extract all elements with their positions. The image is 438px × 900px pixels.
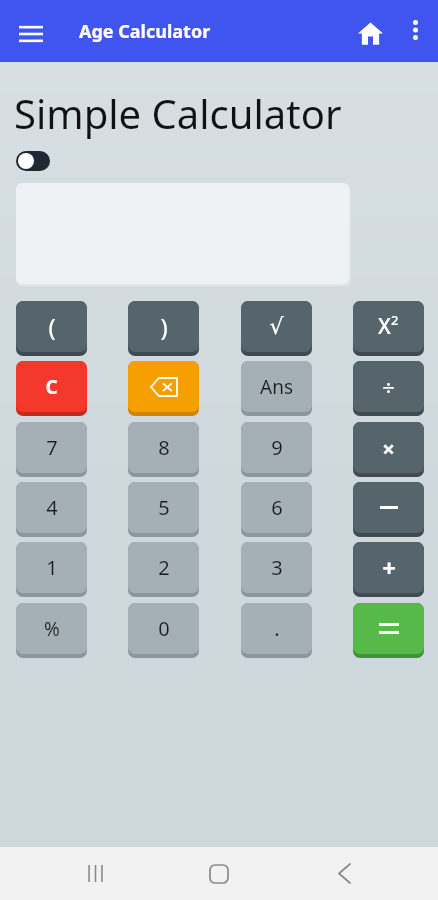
- staticText: ): [160, 310, 168, 343]
- button[interactable]: Ans: [241, 361, 312, 416]
- staticText: +: [382, 551, 396, 584]
- button[interactable]: ÷: [353, 361, 424, 416]
- button[interactable]: 1: [16, 542, 87, 597]
- button[interactable]: 0: [128, 603, 199, 658]
- button[interactable]: +: [353, 542, 424, 597]
- button[interactable]: 2: [128, 542, 199, 597]
- staticText: 2: [158, 554, 170, 581]
- other: Backspace: [128, 361, 199, 412]
- button[interactable]: Home: [348, 11, 392, 55]
- staticText: 6: [271, 494, 283, 521]
- staticText: 8: [158, 434, 170, 461]
- button[interactable]: %: [16, 603, 87, 658]
- staticText: C: [45, 374, 58, 400]
- staticText: 9: [271, 434, 283, 461]
- staticText: %: [44, 616, 60, 642]
- button[interactable]: Back: [314, 847, 374, 900]
- staticText: Ans: [260, 374, 293, 400]
- button[interactable]: 4: [16, 482, 87, 537]
- button[interactable]: 6: [241, 482, 312, 537]
- button[interactable]: .: [241, 603, 312, 658]
- staticText: 3: [271, 554, 283, 581]
- button[interactable]: 8: [128, 422, 199, 477]
- staticText: 0: [158, 615, 170, 642]
- button[interactable]: 7: [16, 422, 87, 477]
- button[interactable]: Backspace: [128, 361, 199, 416]
- staticText: 4: [46, 494, 58, 521]
- other: Minus: [353, 482, 424, 533]
- staticText: ×: [382, 433, 395, 463]
- staticText: 5: [158, 494, 170, 521]
- button[interactable]: 9: [241, 422, 312, 477]
- button[interactable]: Toggle mode: [16, 150, 52, 172]
- other: Equals: [353, 603, 424, 654]
- staticText: 7: [46, 434, 58, 461]
- button[interactable]: Equals: [353, 603, 424, 658]
- button[interactable]: √: [241, 301, 312, 356]
- staticText: (: [48, 310, 56, 343]
- button[interactable]: ×: [353, 422, 424, 477]
- button[interactable]: More options: [396, 11, 434, 49]
- staticText: 1: [46, 554, 58, 581]
- button[interactable]: (: [16, 301, 87, 356]
- button[interactable]: Menu: [10, 13, 52, 55]
- staticText: Age Calculator: [79, 19, 211, 44]
- staticText: X: [378, 312, 391, 341]
- button[interactable]: Recents: [65, 847, 125, 900]
- button[interactable]: Minus: [353, 482, 424, 537]
- button[interactable]: X: [353, 301, 424, 356]
- staticText: 2: [391, 311, 399, 329]
- button[interactable]: Home: [189, 847, 249, 900]
- staticText: √: [269, 314, 284, 340]
- button[interactable]: C: [16, 361, 87, 416]
- staticText: Simple Calculator: [14, 86, 342, 140]
- staticText: .: [274, 615, 280, 642]
- staticText: ÷: [382, 372, 395, 402]
- button[interactable]: ): [128, 301, 199, 356]
- button[interactable]: 5: [128, 482, 199, 537]
- button[interactable]: 3: [241, 542, 312, 597]
